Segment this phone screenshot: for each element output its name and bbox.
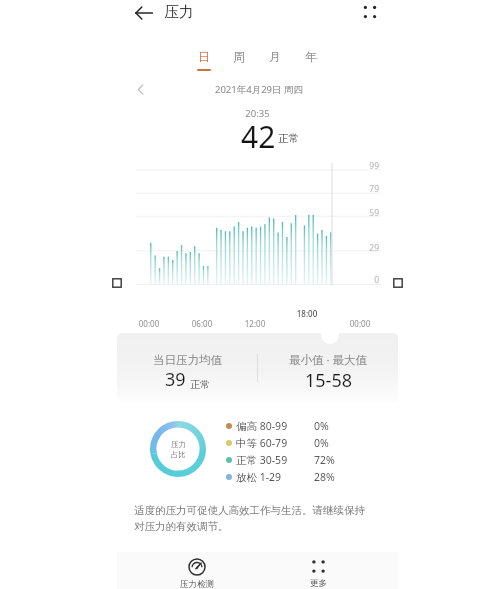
staticText: 18:00 [291, 308, 323, 319]
button[interactable]: 中等 60-79 [226, 434, 356, 451]
staticText: 最小值 · 最大值 [289, 352, 368, 368]
button[interactable]: 放松 1-29 [226, 468, 356, 485]
staticText: 占比 [171, 450, 186, 459]
staticText: 99 [354, 160, 379, 172]
staticText: 当日压力均值 [153, 353, 222, 367]
button[interactable]: 压力检测 [167, 553, 227, 589]
staticText: 正常 [190, 378, 210, 391]
staticText: 20:35 [117, 107, 398, 120]
staticText: 39 [165, 367, 186, 392]
button[interactable]: 更多 More [288, 553, 348, 589]
staticText: 29 [354, 242, 379, 254]
staticText: 00:00 [133, 318, 165, 329]
staticText: 日 [198, 49, 210, 64]
staticText: 年 [305, 49, 317, 64]
button[interactable]: Expand left [112, 278, 122, 288]
staticText: 放松 1-29 [236, 470, 282, 484]
staticText: 0% [314, 436, 329, 450]
staticText: 周 [233, 49, 245, 64]
staticText: 59 [354, 207, 379, 219]
staticText: 2021年4月29日 周四 [200, 83, 318, 96]
staticText: 正常 [278, 132, 299, 145]
button[interactable]: Previous day [130, 79, 150, 99]
staticText: 适度的压力可促使人高效工作与生活。请继续保持对压力的有效调节。 [134, 504, 370, 533]
staticText: 中等 60-79 [236, 436, 288, 450]
staticText: 更多 [310, 578, 327, 589]
button[interactable]: 周 [221, 46, 257, 72]
staticText: 42 [241, 116, 276, 151]
staticText: 偏高 80-99 [236, 419, 288, 433]
button[interactable]: 月 [257, 46, 293, 72]
staticText: 压力 [171, 440, 186, 449]
button[interactable]: 当日压力均值 [117, 333, 257, 403]
staticText: 15-58 [305, 368, 352, 393]
staticText: 72% [314, 453, 335, 467]
staticText: 0 [354, 274, 379, 286]
staticText: 月 [269, 49, 281, 64]
button[interactable]: Back [132, 1, 156, 25]
button[interactable]: 正常 30-59 [226, 451, 356, 468]
staticText: 0% [314, 419, 329, 433]
staticText: 正常 30-59 [236, 453, 288, 467]
button[interactable]: More options [358, 0, 382, 24]
staticText: 79 [354, 183, 379, 195]
button[interactable]: 年 [293, 46, 329, 72]
button[interactable]: 偏高 80-99 [226, 417, 356, 434]
staticText: 12:00 [239, 318, 271, 329]
staticText: 压力检测 [180, 579, 214, 589]
button[interactable]: 最小值 · 最大值 [258, 333, 398, 403]
button[interactable]: Expand right [393, 278, 403, 288]
staticText: 压力 [164, 3, 194, 22]
button[interactable]: 日 [186, 46, 221, 72]
staticText: 00:00 [344, 318, 376, 329]
staticText: 06:00 [186, 318, 218, 329]
staticText: 28% [314, 470, 335, 484]
